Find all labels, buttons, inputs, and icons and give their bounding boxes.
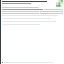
button[interactable] [2, 18, 63, 19]
button[interactable] [2, 13, 63, 14]
button[interactable]: Status chart [56, 0, 63, 7]
button[interactable] [2, 15, 63, 16]
button[interactable] [2, 9, 63, 10]
button[interactable] [2, 61, 63, 64]
button[interactable] [2, 21, 63, 22]
button[interactable] [2, 11, 63, 12]
button[interactable] [2, 24, 63, 25]
